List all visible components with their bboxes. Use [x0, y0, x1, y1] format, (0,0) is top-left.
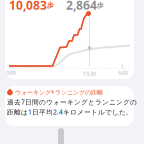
staticText: 0:00 — [6, 69, 16, 76]
staticText: 歩 — [97, 1, 104, 9]
staticText: 15:30 — [83, 70, 96, 77]
button[interactable]: 10,083 — [0, 0, 144, 144]
staticText: 歩 — [47, 1, 54, 9]
staticText: 10,083 — [9, 0, 47, 13]
staticText: 過去7日間のウォーキングとランニングの — [7, 97, 137, 106]
staticText: ウォーキング+ランニングの距離 — [15, 88, 103, 96]
staticText: 6:00 — [118, 69, 128, 76]
staticText: 距離は1日平均2.4キロメートルでした。 — [7, 107, 133, 116]
button[interactable]: ウォーキング+ランニングの距離 — [0, 0, 144, 144]
staticText: 2,864 — [66, 0, 97, 13]
